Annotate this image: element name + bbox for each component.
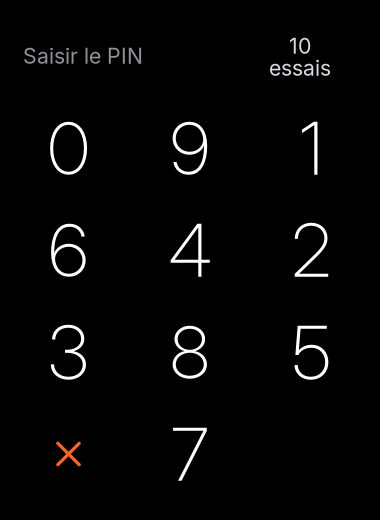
button[interactable]: 0: [8, 96, 129, 198]
staticText: 3: [48, 308, 89, 396]
staticText: 7: [171, 410, 209, 498]
button[interactable]: Delete: [8, 402, 129, 504]
staticText: 2: [291, 206, 331, 294]
staticText: 8: [170, 308, 210, 396]
staticText: 10: [289, 33, 311, 59]
button[interactable]: 6: [8, 198, 129, 300]
staticText: essais: [269, 55, 331, 81]
button[interactable]: 7: [129, 402, 251, 504]
staticText: 6: [48, 206, 88, 294]
button[interactable]: 2: [251, 198, 372, 300]
staticText: 1: [299, 104, 323, 192]
button[interactable]: 5: [251, 300, 372, 402]
button[interactable]: 9: [129, 96, 251, 198]
button[interactable]: 1: [251, 96, 372, 198]
staticText: 4: [168, 206, 211, 294]
button[interactable]: 3: [8, 300, 129, 402]
button[interactable]: 8: [129, 300, 251, 402]
staticText: Saisir le PIN: [23, 43, 143, 69]
staticText: 9: [170, 104, 210, 192]
staticText: 5: [292, 308, 331, 396]
button[interactable]: 4: [129, 198, 251, 300]
staticText: 0: [47, 104, 89, 192]
